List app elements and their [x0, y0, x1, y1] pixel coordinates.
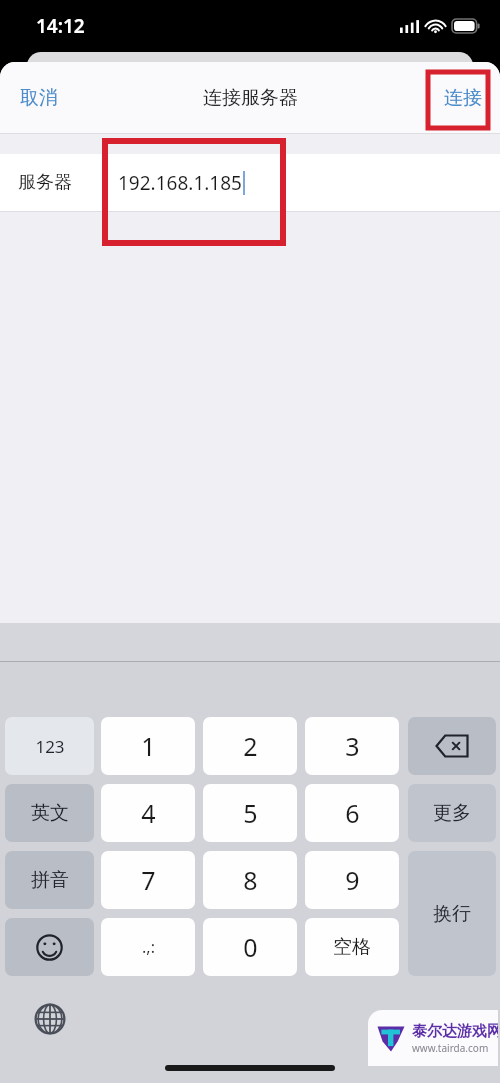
staticText: 拼音	[31, 868, 69, 892]
staticText: 192.168.1.185	[118, 170, 242, 196]
button[interactable]: 7	[101, 851, 195, 909]
staticText: 空格	[333, 935, 371, 959]
button[interactable]: 空格	[305, 918, 399, 976]
staticText: 连接服务器	[203, 86, 298, 110]
staticText: 泰尔达游戏网	[412, 1022, 498, 1041]
button[interactable]: 123	[5, 717, 94, 775]
staticText: www.tairda.com	[412, 1041, 489, 1055]
staticText: .,:	[142, 936, 155, 958]
button[interactable]: 8	[203, 851, 297, 909]
button[interactable]: 英文	[5, 784, 94, 842]
button[interactable]: 换行	[408, 851, 496, 976]
button[interactable]: 3	[305, 717, 399, 775]
button[interactable]: Backspace	[408, 717, 496, 775]
button[interactable]: 6	[305, 784, 399, 842]
button[interactable]: 9	[305, 851, 399, 909]
staticText: 14:12	[36, 13, 85, 39]
staticText: 6	[345, 796, 360, 830]
staticText: 取消	[20, 86, 58, 110]
button[interactable]: 1	[101, 717, 195, 775]
staticText: 更多	[433, 801, 471, 825]
button[interactable]: 0	[203, 918, 297, 976]
staticText: 2	[243, 729, 258, 763]
staticText: 7	[141, 863, 156, 897]
staticText: 0	[243, 930, 258, 964]
button[interactable]: Switch keyboard language	[30, 999, 70, 1039]
button[interactable]: .,:	[101, 918, 195, 976]
staticText: 英文	[31, 801, 69, 825]
staticText: 服务器	[18, 171, 72, 194]
button[interactable]: 更多	[408, 784, 496, 842]
button[interactable]: Emoji	[5, 918, 94, 976]
staticText: 4	[141, 796, 156, 830]
staticText: 换行	[433, 902, 471, 926]
button[interactable]: 4	[101, 784, 195, 842]
button[interactable]: 192.168.1.185	[118, 170, 245, 196]
staticText: 5	[243, 796, 258, 830]
button[interactable]: 5	[203, 784, 297, 842]
staticText: 3	[345, 729, 360, 763]
staticText: 123	[35, 735, 65, 758]
staticText: 9	[345, 863, 360, 897]
button[interactable]: 2	[203, 717, 297, 775]
staticText: 8	[243, 863, 258, 897]
staticText: 连接	[444, 86, 482, 110]
button[interactable]: 取消	[12, 78, 66, 118]
button[interactable]: 拼音	[5, 851, 94, 909]
staticText: 1	[141, 729, 156, 763]
button[interactable]: 连接	[436, 80, 490, 116]
